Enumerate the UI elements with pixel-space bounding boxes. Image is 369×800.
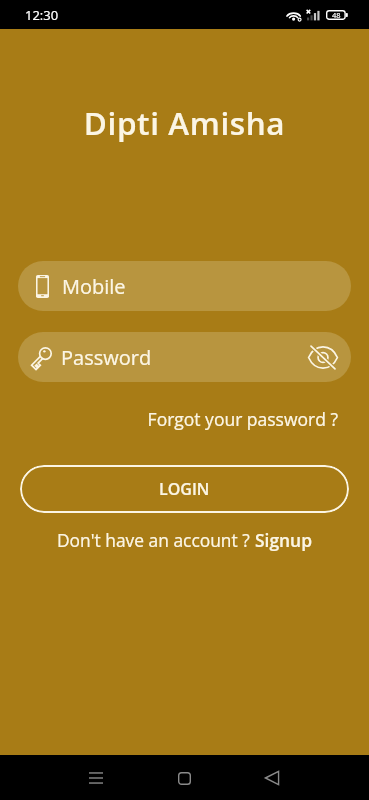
staticText: Signup — [255, 528, 312, 552]
button[interactable]: Don't have an account ? — [0, 528, 369, 552]
staticText: Mobile — [62, 273, 126, 300]
button[interactable]: Recent apps — [74, 756, 118, 800]
button[interactable]: LOGIN — [20, 465, 349, 513]
button[interactable]: Forgot your password ? — [0, 407, 338, 431]
staticText: Dipti Amisha — [0, 101, 369, 144]
staticText: 48 — [332, 10, 341, 20]
staticText: Password — [61, 344, 152, 371]
staticText: Don't have an account ? — [57, 528, 255, 552]
button[interactable]: Back — [250, 756, 294, 800]
button[interactable]: Home — [162, 756, 206, 800]
button[interactable]: Mobile — [18, 261, 351, 311]
staticText: LOGIN — [159, 478, 210, 500]
staticText: 12:30 — [25, 6, 59, 24]
button[interactable]: Show password — [306, 340, 340, 374]
button[interactable]: Password — [18, 332, 351, 382]
